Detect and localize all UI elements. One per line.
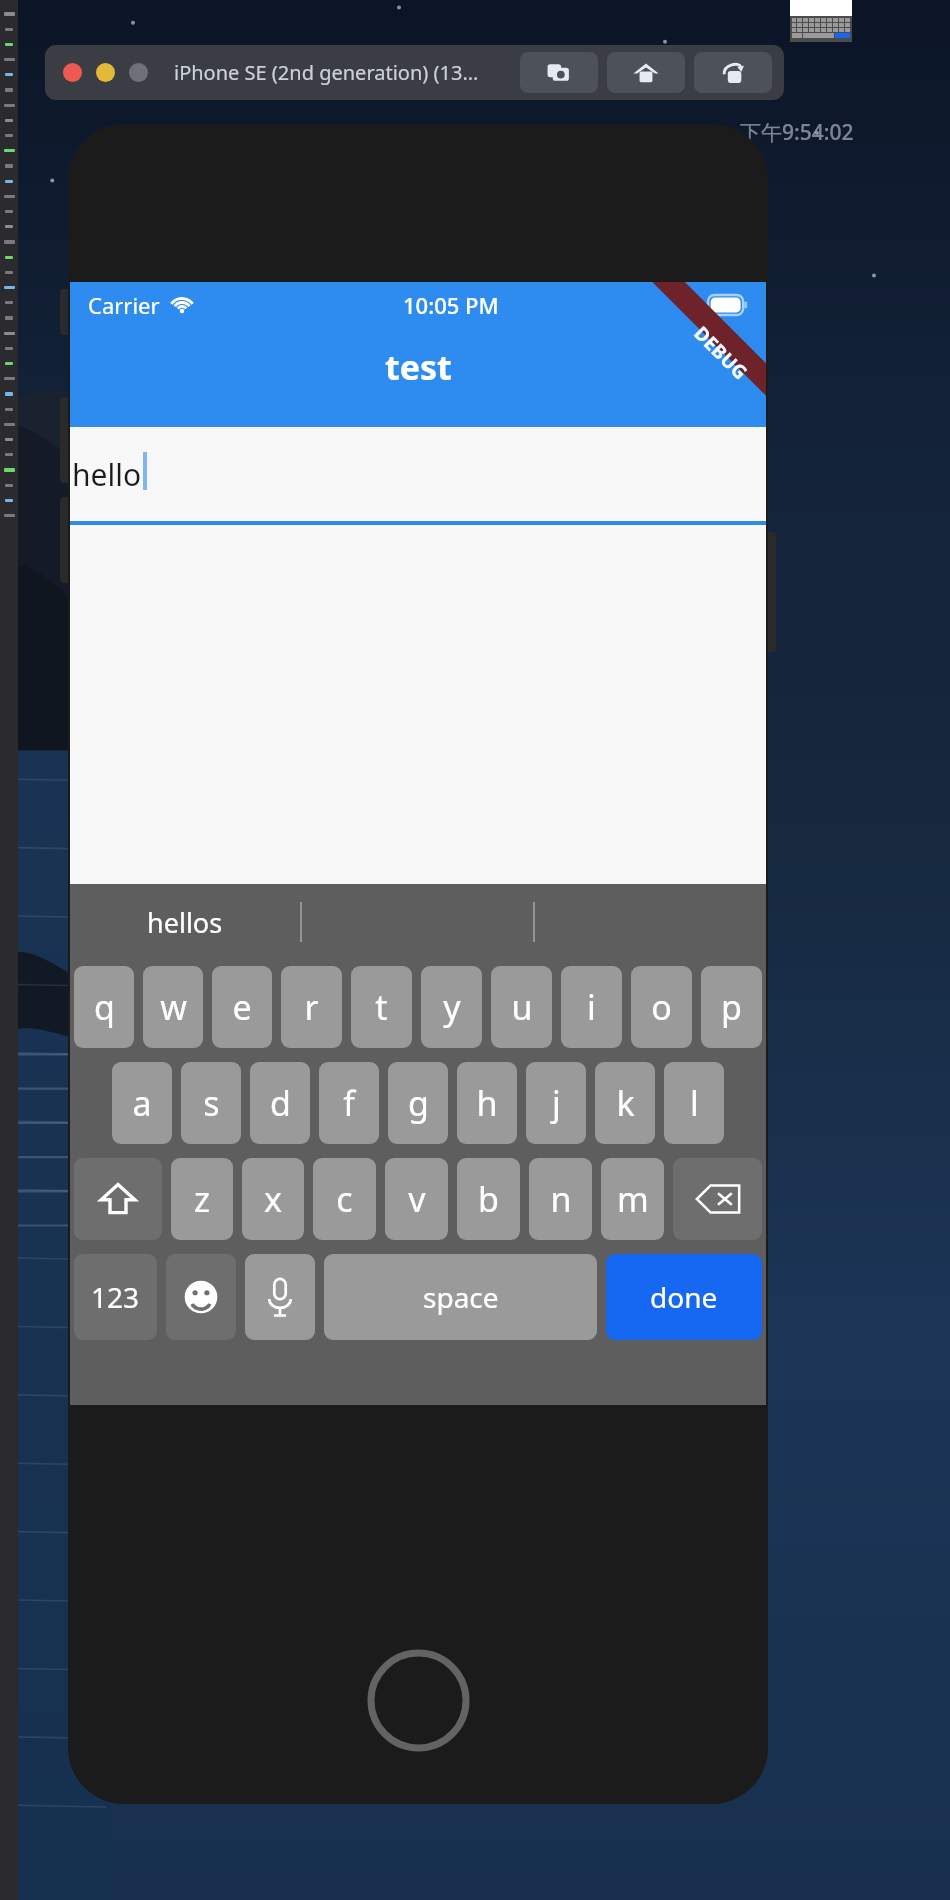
button[interactable]: h	[457, 1062, 517, 1144]
staticText: q	[94, 984, 115, 1030]
staticText: m	[617, 1176, 649, 1222]
button[interactable]: d	[250, 1062, 310, 1144]
staticText: 123	[91, 1278, 140, 1316]
button[interactable]: Zoom	[129, 63, 148, 82]
button[interactable]: r	[281, 966, 342, 1048]
button[interactable]: j	[526, 1062, 586, 1144]
button[interactable]: b	[457, 1158, 520, 1240]
button[interactable]: t	[351, 966, 412, 1048]
button[interactable]: 123	[74, 1254, 157, 1340]
staticText: hellos	[147, 904, 223, 941]
staticText: c	[336, 1176, 353, 1222]
button[interactable]: hello	[70, 427, 766, 525]
button[interactable]: q	[74, 966, 134, 1048]
button[interactable]: y	[421, 966, 482, 1048]
button[interactable]: u	[491, 966, 552, 1048]
staticText: k	[616, 1080, 635, 1126]
button[interactable]: a	[112, 1062, 172, 1144]
button[interactable]: c	[313, 1158, 376, 1240]
staticText: h	[476, 1080, 498, 1126]
staticText: 下午9:54:02	[740, 118, 854, 147]
staticText: z	[194, 1176, 210, 1222]
button[interactable]: k	[595, 1062, 655, 1144]
button[interactable]: Backspace	[673, 1158, 762, 1240]
button[interactable]: i	[561, 966, 622, 1048]
staticText: x	[264, 1176, 282, 1222]
staticText: f	[343, 1080, 355, 1126]
staticText: iPhone SE (2nd generation) (13…	[174, 59, 479, 86]
staticText: e	[232, 984, 252, 1030]
staticText: space	[423, 1278, 499, 1316]
button[interactable]: Rotate	[694, 52, 772, 93]
button[interactable]: Silent switch	[60, 289, 78, 335]
button[interactable]: x	[242, 1158, 304, 1240]
button[interactable]: p	[701, 966, 762, 1048]
staticText: a	[132, 1080, 152, 1126]
button[interactable]: w	[143, 966, 203, 1048]
button[interactable]: l	[664, 1062, 724, 1144]
staticText: u	[511, 984, 533, 1030]
button[interactable]: Home	[607, 52, 685, 93]
staticText: w	[160, 984, 187, 1030]
staticText: test	[385, 344, 452, 390]
staticText: hello	[72, 454, 142, 495]
staticText: i	[587, 984, 596, 1030]
staticText: t	[375, 984, 388, 1030]
button[interactable]: Home button	[367, 1649, 470, 1752]
button[interactable]: o	[631, 966, 692, 1048]
button[interactable]: Volume up	[60, 397, 78, 483]
staticText: j	[552, 1080, 561, 1126]
staticText: s	[203, 1080, 220, 1126]
staticText: n	[550, 1176, 572, 1222]
staticText: v	[408, 1176, 426, 1222]
staticText: d	[270, 1080, 291, 1126]
staticText: done	[650, 1278, 718, 1316]
staticText: 10:05 PM	[403, 290, 499, 320]
button[interactable]: n	[529, 1158, 592, 1240]
button[interactable]: g	[388, 1062, 448, 1144]
staticText: Carrier	[88, 290, 160, 320]
button[interactable]: Close	[63, 63, 82, 82]
staticText: p	[721, 984, 742, 1030]
staticText: l	[690, 1080, 699, 1126]
button[interactable]: v	[385, 1158, 448, 1240]
button[interactable]: Screenshot	[520, 52, 598, 93]
button[interactable]: f	[319, 1062, 379, 1144]
button[interactable]: e	[212, 966, 272, 1048]
staticText: o	[651, 984, 672, 1030]
button[interactable]: space	[324, 1254, 597, 1340]
button[interactable]: Emoji	[166, 1254, 236, 1340]
staticText: b	[478, 1176, 499, 1222]
button[interactable]: hellos	[70, 884, 300, 960]
button[interactable]: Minimise	[96, 63, 115, 82]
staticText: g	[408, 1080, 429, 1126]
button[interactable]: Volume down	[60, 497, 78, 583]
button[interactable]: Shift	[74, 1158, 162, 1240]
staticText: DEBUG	[688, 320, 754, 386]
staticText: y	[443, 984, 461, 1030]
button[interactable]: done	[606, 1254, 762, 1340]
button[interactable]: m	[601, 1158, 664, 1240]
staticText: r	[304, 984, 319, 1030]
button[interactable]: s	[181, 1062, 241, 1144]
button[interactable]: Power	[758, 532, 776, 652]
button[interactable]: z	[171, 1158, 233, 1240]
button[interactable]: Dictation	[245, 1254, 315, 1340]
